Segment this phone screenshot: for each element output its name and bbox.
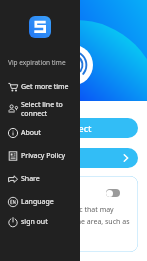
- button[interactable]: sign out: [0, 211, 80, 233]
- button[interactable]: Share: [0, 168, 80, 190]
- button[interactable]: Select line to connect: [9, 148, 138, 168]
- staticText: About: [21, 128, 41, 138]
- button[interactable]: Language: [0, 191, 80, 213]
- staticText: Connect: [56, 122, 92, 134]
- button[interactable]: Turbo mode switch: [106, 189, 120, 197]
- staticText: Turbo mode: [15, 183, 39, 205]
- staticText: Language: [21, 197, 54, 207]
- staticText: sign out: [21, 217, 48, 227]
- staticText: Share: [21, 174, 40, 184]
- staticText: Select line to connect: [21, 100, 63, 118]
- button[interactable]: Get more time: [0, 76, 80, 98]
- staticText: Vip expiration time: [8, 58, 66, 67]
- button[interactable]: Connect: [9, 118, 138, 138]
- button[interactable]: Select line to connect: [0, 98, 80, 120]
- staticText: Block network traffic that may affect yo…: [15, 205, 133, 237]
- staticText: Get more time: [21, 82, 69, 92]
- staticText: Privacy Policy: [21, 151, 66, 161]
- button[interactable]: Privacy Policy: [0, 145, 80, 167]
- button[interactable]: Connect: [52, 45, 93, 86]
- button[interactable]: About: [0, 122, 80, 144]
